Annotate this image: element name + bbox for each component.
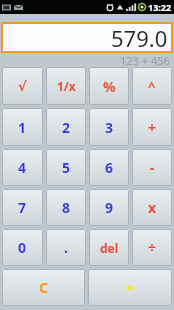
staticText: 8 xyxy=(62,198,71,217)
staticText: 579.0 xyxy=(111,23,168,53)
button[interactable]: 4 xyxy=(2,149,43,186)
button[interactable]: ÷ xyxy=(132,229,172,266)
button[interactable]: . xyxy=(46,229,86,266)
button[interactable]: 9 xyxy=(89,189,129,226)
button[interactable]: 6 xyxy=(89,149,129,186)
staticText: 4 xyxy=(18,158,27,177)
button[interactable]: √ xyxy=(2,67,43,105)
button[interactable]: 2 xyxy=(46,108,86,146)
button[interactable]: 8 xyxy=(46,189,86,226)
staticText: 7 xyxy=(18,198,27,217)
staticText: del xyxy=(100,240,119,256)
button[interactable]: % xyxy=(89,67,129,105)
staticText: 3 xyxy=(105,118,114,137)
staticText: 9 xyxy=(105,198,114,217)
button[interactable]: + xyxy=(132,108,172,146)
staticText: C xyxy=(39,278,48,297)
staticText: = xyxy=(126,278,135,297)
staticText: √ xyxy=(18,79,27,94)
button[interactable]: 3 xyxy=(89,108,129,146)
staticText: 1/x xyxy=(57,78,76,94)
staticText: 1 xyxy=(18,118,27,137)
staticText: x xyxy=(148,198,157,217)
button[interactable]: 5 xyxy=(46,149,86,186)
button[interactable]: x xyxy=(132,189,172,226)
staticText: 2 xyxy=(62,118,71,137)
staticText: 6 xyxy=(105,158,114,177)
staticText: - xyxy=(150,158,155,177)
button[interactable]: - xyxy=(132,149,172,186)
button[interactable]: C xyxy=(2,269,85,306)
staticText: % xyxy=(103,77,116,96)
staticText: + xyxy=(148,118,157,137)
staticText: 5 xyxy=(62,158,71,177)
staticText: 123 + 456 xyxy=(120,53,170,67)
button[interactable]: 1 xyxy=(2,108,43,146)
button[interactable]: 7 xyxy=(2,189,43,226)
button[interactable]: del xyxy=(89,229,129,266)
staticText: . xyxy=(64,238,68,257)
staticText: ÷ xyxy=(148,238,157,257)
staticText: 0 xyxy=(18,238,27,257)
button[interactable]: = xyxy=(88,269,172,306)
staticText: 13:22 xyxy=(148,1,172,13)
button[interactable]: 0 xyxy=(2,229,43,266)
staticText: ^ xyxy=(148,77,156,95)
button[interactable]: 1/x xyxy=(46,67,86,105)
button[interactable]: 579.0 xyxy=(1,22,173,53)
button[interactable]: ^ xyxy=(132,67,172,105)
